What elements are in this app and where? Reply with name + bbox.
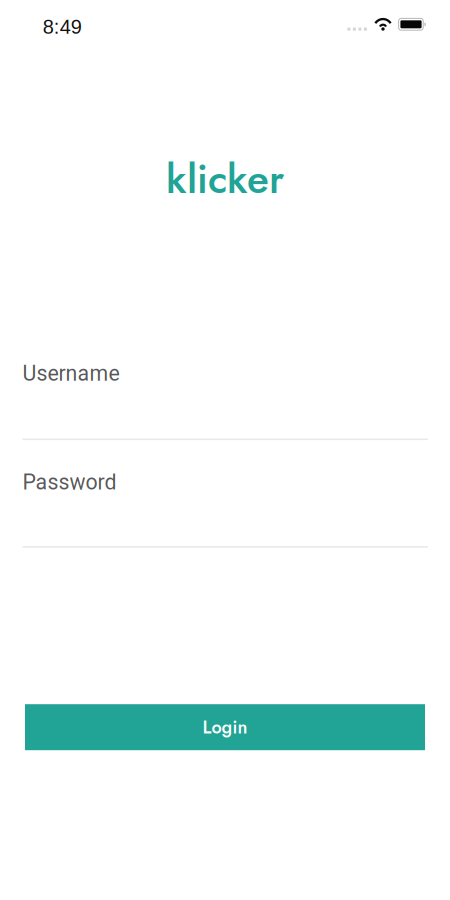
staticText: Password <box>22 470 116 495</box>
button[interactable]: Login <box>25 704 425 750</box>
staticText: Login <box>202 714 247 740</box>
button[interactable]: Password <box>22 470 428 548</box>
button[interactable]: Username <box>22 361 428 440</box>
staticText: Username <box>22 361 119 386</box>
staticText: klicker <box>166 150 284 208</box>
staticText: 8:49 <box>43 16 82 38</box>
